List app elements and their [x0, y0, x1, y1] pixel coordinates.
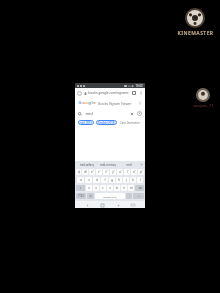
staticText: c: [102, 186, 104, 190]
button[interactable]: m: [128, 185, 134, 191]
button[interactable]: k: [130, 177, 136, 183]
staticText: f: [104, 178, 106, 182]
other: Menu: [138, 101, 142, 105]
button[interactable]: Reload: [75, 88, 145, 98]
staticText: e: [91, 170, 93, 174]
button[interactable]: English (US): [95, 193, 125, 199]
staticText: ☺: [89, 195, 92, 198]
staticText: mid: [126, 163, 132, 167]
button[interactable]: n: [121, 185, 127, 191]
button[interactable]: l: [137, 177, 143, 183]
staticText: g: [111, 178, 113, 182]
staticText: d: [96, 178, 98, 182]
staticText: 4: [99, 169, 101, 172]
button[interactable]: .: [126, 193, 132, 199]
staticText: a: [80, 178, 82, 182]
button[interactable]: mid-wifery: [77, 163, 97, 167]
button[interactable]: Channel watermark: [188, 88, 218, 108]
staticText: p: [140, 170, 142, 174]
staticText: w: [84, 170, 87, 174]
staticText: Case-Insensitive: [120, 121, 140, 125]
staticText: .: [129, 194, 130, 198]
staticText: sanjeev_11: [193, 103, 214, 108]
staticText: g: [88, 100, 91, 106]
other: Clear: [130, 112, 134, 116]
staticText: G: [78, 100, 82, 106]
button[interactable]: ⇧: [76, 185, 85, 191]
button[interactable]: a: [77, 177, 84, 183]
button[interactable]: 8: [124, 169, 130, 175]
staticText: 6: [113, 169, 115, 172]
staticText: x: [95, 186, 97, 190]
button[interactable]: 5: [103, 169, 109, 175]
staticText: l: [140, 178, 141, 182]
staticText: o: [133, 170, 135, 174]
button[interactable]: x: [93, 185, 99, 191]
staticText: 8: [127, 169, 129, 172]
staticText: 7: [120, 169, 122, 172]
other: Reload: [77, 91, 82, 96]
button[interactable]: mid: [118, 163, 139, 167]
button[interactable]: b: [114, 185, 120, 191]
button[interactable]: c: [100, 185, 106, 191]
staticText: h: [118, 178, 120, 182]
staticText: 9: [134, 169, 136, 172]
button[interactable]: mid 2019: [78, 120, 94, 125]
staticText: z: [88, 186, 90, 190]
button[interactable]: Keyboard: [130, 202, 136, 208]
staticText: o: [82, 100, 85, 106]
button[interactable]: ☺: [87, 193, 94, 199]
button[interactable]: h: [116, 177, 122, 183]
button[interactable]: s: [85, 177, 92, 183]
button[interactable]: 4: [96, 169, 102, 175]
staticText: j: [126, 178, 127, 182]
button[interactable]: G: [75, 98, 145, 108]
button[interactable]: 6: [110, 169, 116, 175]
staticText: o: [85, 100, 88, 106]
button[interactable]: KineMaster watermark: [173, 8, 217, 37]
button[interactable]: f: [101, 177, 108, 183]
staticText: mid: [85, 111, 93, 116]
button[interactable]: 7: [117, 169, 123, 175]
staticText: books.google.com/ngrams: [88, 91, 129, 95]
button[interactable]: d: [93, 177, 100, 183]
button[interactable]: ⌫: [135, 185, 144, 191]
staticText: Books Ngram Viewer: [98, 101, 132, 106]
staticText: ▾⊿ ▮: [128, 84, 134, 87]
staticText: t: [105, 170, 107, 174]
staticText: 1: [78, 169, 80, 172]
staticText: 0: [141, 169, 143, 172]
staticText: 3: [92, 169, 94, 172]
button[interactable]: z: [86, 185, 92, 191]
button[interactable]: j: [123, 177, 129, 183]
button[interactable]: 3: [89, 169, 95, 175]
staticText: l: [91, 100, 93, 106]
staticText: ⇧: [79, 187, 82, 190]
button[interactable]: Search: [75, 108, 145, 119]
button[interactable]: v: [107, 185, 113, 191]
staticText: v: [109, 186, 111, 190]
staticText: mid-wifery: [80, 163, 94, 167]
staticText: u: [119, 170, 121, 174]
staticText: m: [130, 186, 133, 190]
button[interactable]: 1: [76, 169, 81, 175]
other: Search: [78, 112, 82, 116]
button[interactable]: ?123: [76, 193, 86, 199]
button[interactable]: 0: [138, 169, 144, 175]
button[interactable]: Recents: [115, 202, 121, 208]
staticText: k: [132, 178, 134, 182]
button[interactable]: →: [133, 193, 144, 199]
button[interactable]: English (2019): [96, 120, 117, 125]
button[interactable]: mid-century: [97, 163, 118, 167]
staticText: y: [112, 170, 114, 174]
staticText: ?123: [78, 194, 84, 198]
staticText: English (US): [103, 195, 117, 198]
button[interactable]: 2: [82, 169, 88, 175]
staticText: i: [127, 170, 128, 174]
button[interactable]: g: [109, 177, 115, 183]
button[interactable]: Home: [99, 202, 105, 208]
button[interactable]: 9: [131, 169, 137, 175]
staticText: q: [78, 170, 80, 174]
staticText: r: [98, 170, 100, 174]
button[interactable]: Back: [84, 202, 90, 208]
